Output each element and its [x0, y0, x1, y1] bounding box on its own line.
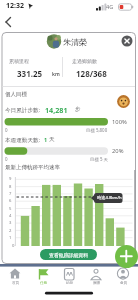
staticText: 累積里程: [9, 58, 29, 64]
staticText: 任務: [40, 281, 48, 286]
staticText: 目標 5,800: [86, 127, 108, 133]
staticText: 0: [12, 243, 15, 249]
button[interactable]: 查看軌跡詳細資料: [40, 249, 97, 260]
staticText: 個人目標: [5, 91, 27, 98]
staticText: 12:32: [6, 1, 24, 11]
staticText: 3: [9, 220, 12, 226]
staticText: 步: [75, 106, 81, 113]
staticText: 128/368: [76, 68, 107, 79]
staticText: 本週運動天數:: [5, 136, 41, 144]
staticText: 查看軌跡詳細資料: [49, 252, 89, 258]
staticText: 6: [9, 198, 12, 204]
staticText: 2: [9, 228, 12, 234]
staticText: 揪團: [93, 281, 101, 286]
button[interactable]: 任務: [30, 267, 57, 288]
staticText: 4G: [106, 3, 114, 10]
staticText: 目標 5 天: [90, 156, 108, 162]
button[interactable]: 首頁: [2, 267, 29, 288]
staticText: 會員: [120, 281, 128, 286]
staticText: 14,281: [45, 105, 68, 115]
staticText: km: [52, 71, 60, 78]
staticText: 20%: [112, 147, 124, 155]
staticText: 朱清榮: [63, 37, 87, 47]
staticText: 9: [9, 176, 12, 182]
staticText: 7: [9, 191, 12, 197]
button[interactable]: [118, 34, 133, 48]
button[interactable]: 揪團: [83, 267, 110, 288]
staticText: 4: [9, 213, 12, 219]
staticText: 5: [9, 206, 12, 212]
staticText: 走過鄉鎮數: [72, 58, 97, 64]
button[interactable]: 紀錄: [56, 267, 83, 288]
staticText: 時速4.8km/h: [97, 195, 122, 201]
staticText: 0: [5, 156, 8, 162]
button[interactable]: [115, 245, 138, 268]
button[interactable]: [2, 13, 16, 28]
staticText: 331.25: [17, 68, 43, 79]
staticText: 今日累計步數:: [5, 106, 41, 114]
staticText: 100%: [112, 118, 127, 126]
staticText: 天: [49, 136, 55, 143]
staticText: 首頁: [12, 281, 20, 286]
button[interactable]: 會員: [110, 267, 137, 288]
staticText: 1: [9, 235, 12, 241]
staticText: 1: [44, 136, 48, 144]
staticText: 紀錄: [66, 281, 74, 286]
staticText: 最新上傳軌跡平均速率: [5, 164, 60, 171]
staticText: 0: [5, 127, 8, 133]
staticText: 8: [9, 184, 12, 190]
